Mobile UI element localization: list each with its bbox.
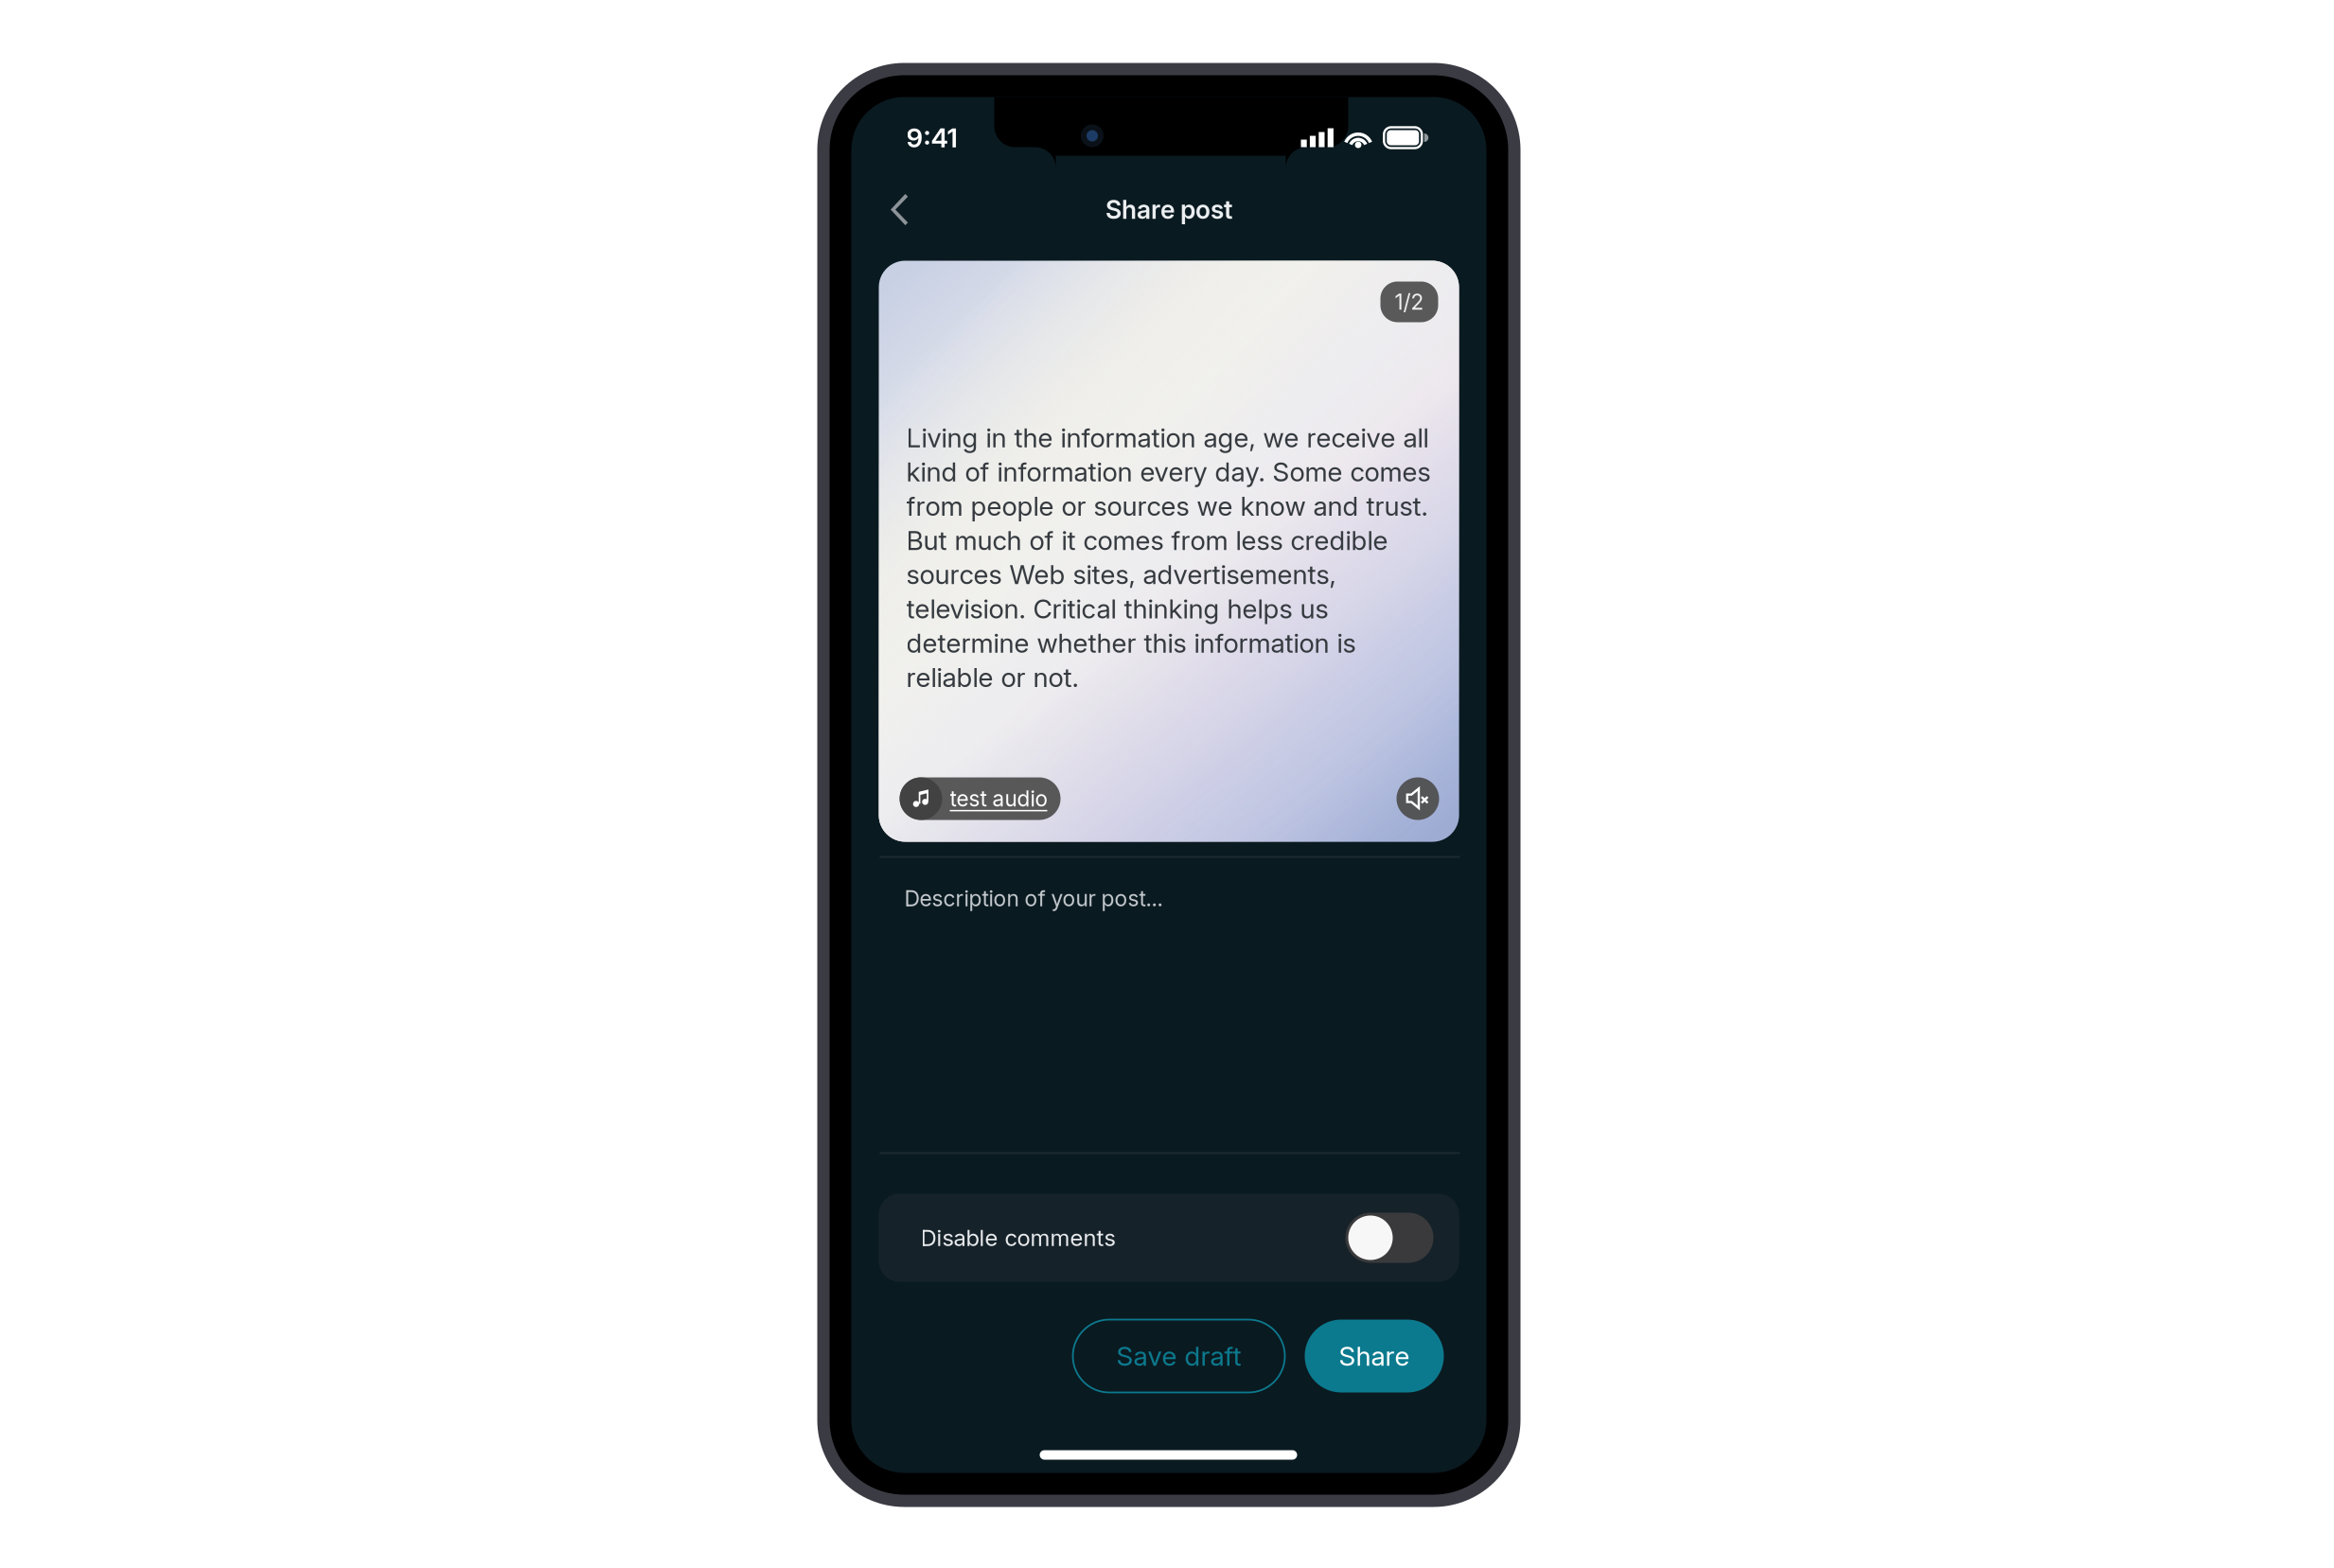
button[interactable]: test audio xyxy=(900,777,1061,820)
staticText: Save draft xyxy=(1116,1340,1241,1372)
staticText: Share xyxy=(1339,1340,1410,1372)
staticText: Description of your post... xyxy=(904,885,1163,911)
staticText: test audio xyxy=(950,786,1047,812)
staticText: 9:41 xyxy=(906,122,957,154)
button[interactable]: Share xyxy=(1305,1320,1444,1392)
button[interactable]: Save draft xyxy=(1073,1320,1285,1392)
button[interactable]: Mute audio xyxy=(1397,777,1439,820)
staticText: Share post xyxy=(1105,194,1232,225)
staticText: 1/2 xyxy=(1395,289,1424,315)
staticText: Disable comments xyxy=(920,1224,1115,1251)
button[interactable]: Disable comments xyxy=(879,1194,1459,1282)
button[interactable]: Back xyxy=(872,182,927,237)
staticText: Living in the information age, we receiv… xyxy=(906,422,1431,693)
